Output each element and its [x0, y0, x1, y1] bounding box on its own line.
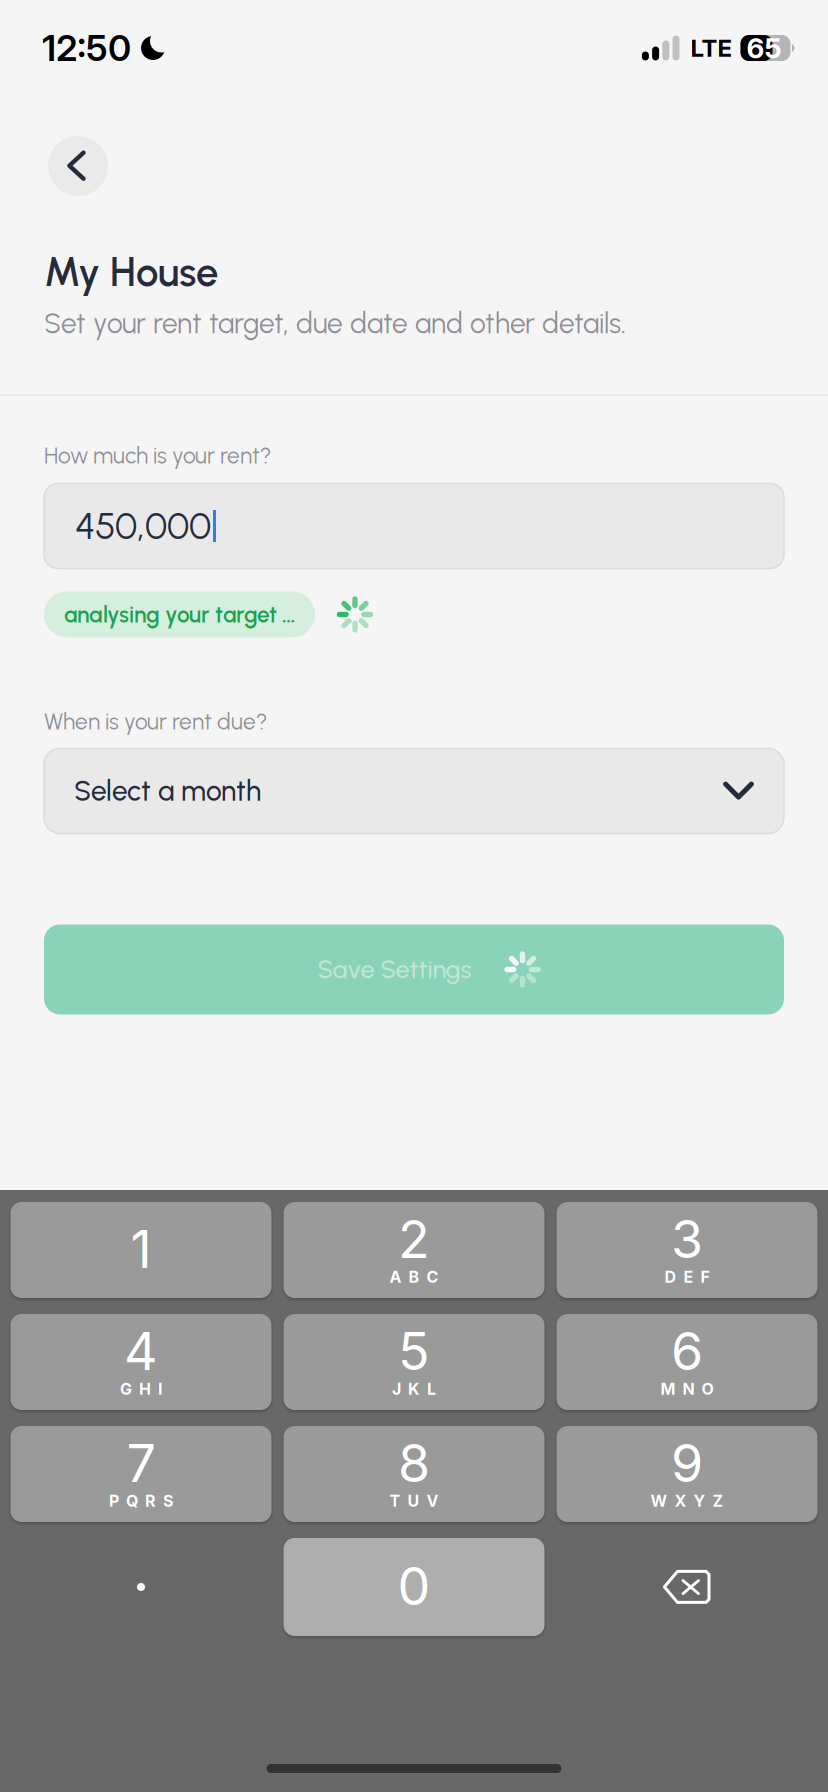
button[interactable]: 6	[556, 1314, 817, 1410]
button[interactable]: 4	[10, 1314, 271, 1410]
button[interactable]: 3	[556, 1202, 817, 1298]
staticText: P Q R S	[109, 1491, 173, 1511]
staticText: 8	[398, 1431, 430, 1494]
staticText: D E F	[664, 1267, 709, 1287]
staticText: 6	[671, 1319, 703, 1382]
staticText: A B C	[389, 1267, 438, 1287]
staticText: Set your rent target, due date and other…	[44, 307, 626, 340]
staticText: 9	[671, 1431, 703, 1494]
button[interactable]: 2	[283, 1202, 544, 1298]
staticText: My House	[44, 248, 218, 296]
staticText: 0	[397, 1554, 430, 1617]
button[interactable]: Save Settings	[44, 924, 784, 1014]
staticText: 12:50	[42, 26, 131, 70]
button[interactable]: Decimal point	[10, 1538, 271, 1636]
staticText: How much is your rent?	[44, 442, 271, 469]
staticText: 5	[398, 1319, 430, 1382]
staticText: LTE	[690, 33, 732, 62]
staticText: When is your rent due?	[44, 708, 267, 735]
button[interactable]: 9	[556, 1426, 817, 1522]
staticText: 3	[671, 1207, 703, 1270]
staticText: 450,000	[75, 504, 211, 548]
button[interactable]: Back	[48, 136, 108, 196]
button[interactable]: 1	[10, 1202, 271, 1298]
staticText: analysing your target …	[64, 601, 295, 628]
button[interactable]: Select a month	[44, 748, 784, 833]
staticText: Save Settings	[317, 954, 471, 985]
button[interactable]: 8	[283, 1426, 544, 1522]
staticText: 1	[130, 1217, 151, 1280]
button[interactable]: Delete	[556, 1538, 817, 1636]
staticText: Select a month	[74, 774, 261, 808]
button[interactable]: 5	[283, 1314, 544, 1410]
staticText: W X Y Z	[650, 1491, 723, 1511]
staticText: 7	[126, 1431, 155, 1494]
staticText: 2	[398, 1207, 430, 1270]
staticText: J K L	[392, 1379, 436, 1399]
button[interactable]: 7	[10, 1426, 271, 1522]
staticText: M N O	[660, 1379, 713, 1399]
button[interactable]: 0	[283, 1538, 544, 1636]
staticText: 65	[746, 31, 781, 65]
staticText: 4	[124, 1319, 158, 1382]
staticText: T U V	[389, 1491, 438, 1511]
staticText: G H I	[120, 1379, 162, 1399]
